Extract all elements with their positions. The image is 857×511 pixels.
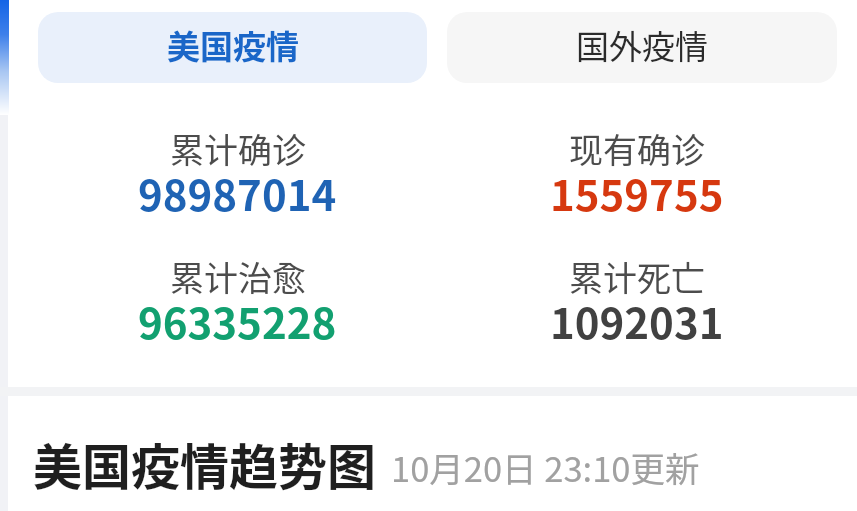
button[interactable]: 累计死亡 (437, 252, 837, 362)
staticText: 1559755 (550, 162, 724, 223)
button[interactable]: 现有确诊 (437, 124, 837, 234)
staticText: 国外疫情 (576, 21, 708, 69)
staticText: 1092031 (550, 290, 724, 351)
staticText: 96335228 (138, 290, 337, 351)
staticText: 98987014 (138, 162, 337, 223)
staticText: 10月20日 23:10更新 (391, 442, 700, 492)
button[interactable]: 美国疫情 (38, 12, 427, 83)
staticText: 美国疫情趋势图 (33, 428, 377, 499)
button[interactable]: 累计治愈 (38, 252, 437, 362)
staticText: 美国疫情 (167, 21, 299, 69)
staticText: 现有确诊 (569, 124, 705, 173)
staticText: 累计死亡 (569, 252, 705, 301)
button[interactable]: 累计确诊 (38, 124, 437, 234)
button[interactable]: 国外疫情 (447, 12, 837, 83)
staticText: 累计治愈 (170, 252, 306, 301)
staticText: 累计确诊 (170, 124, 306, 173)
